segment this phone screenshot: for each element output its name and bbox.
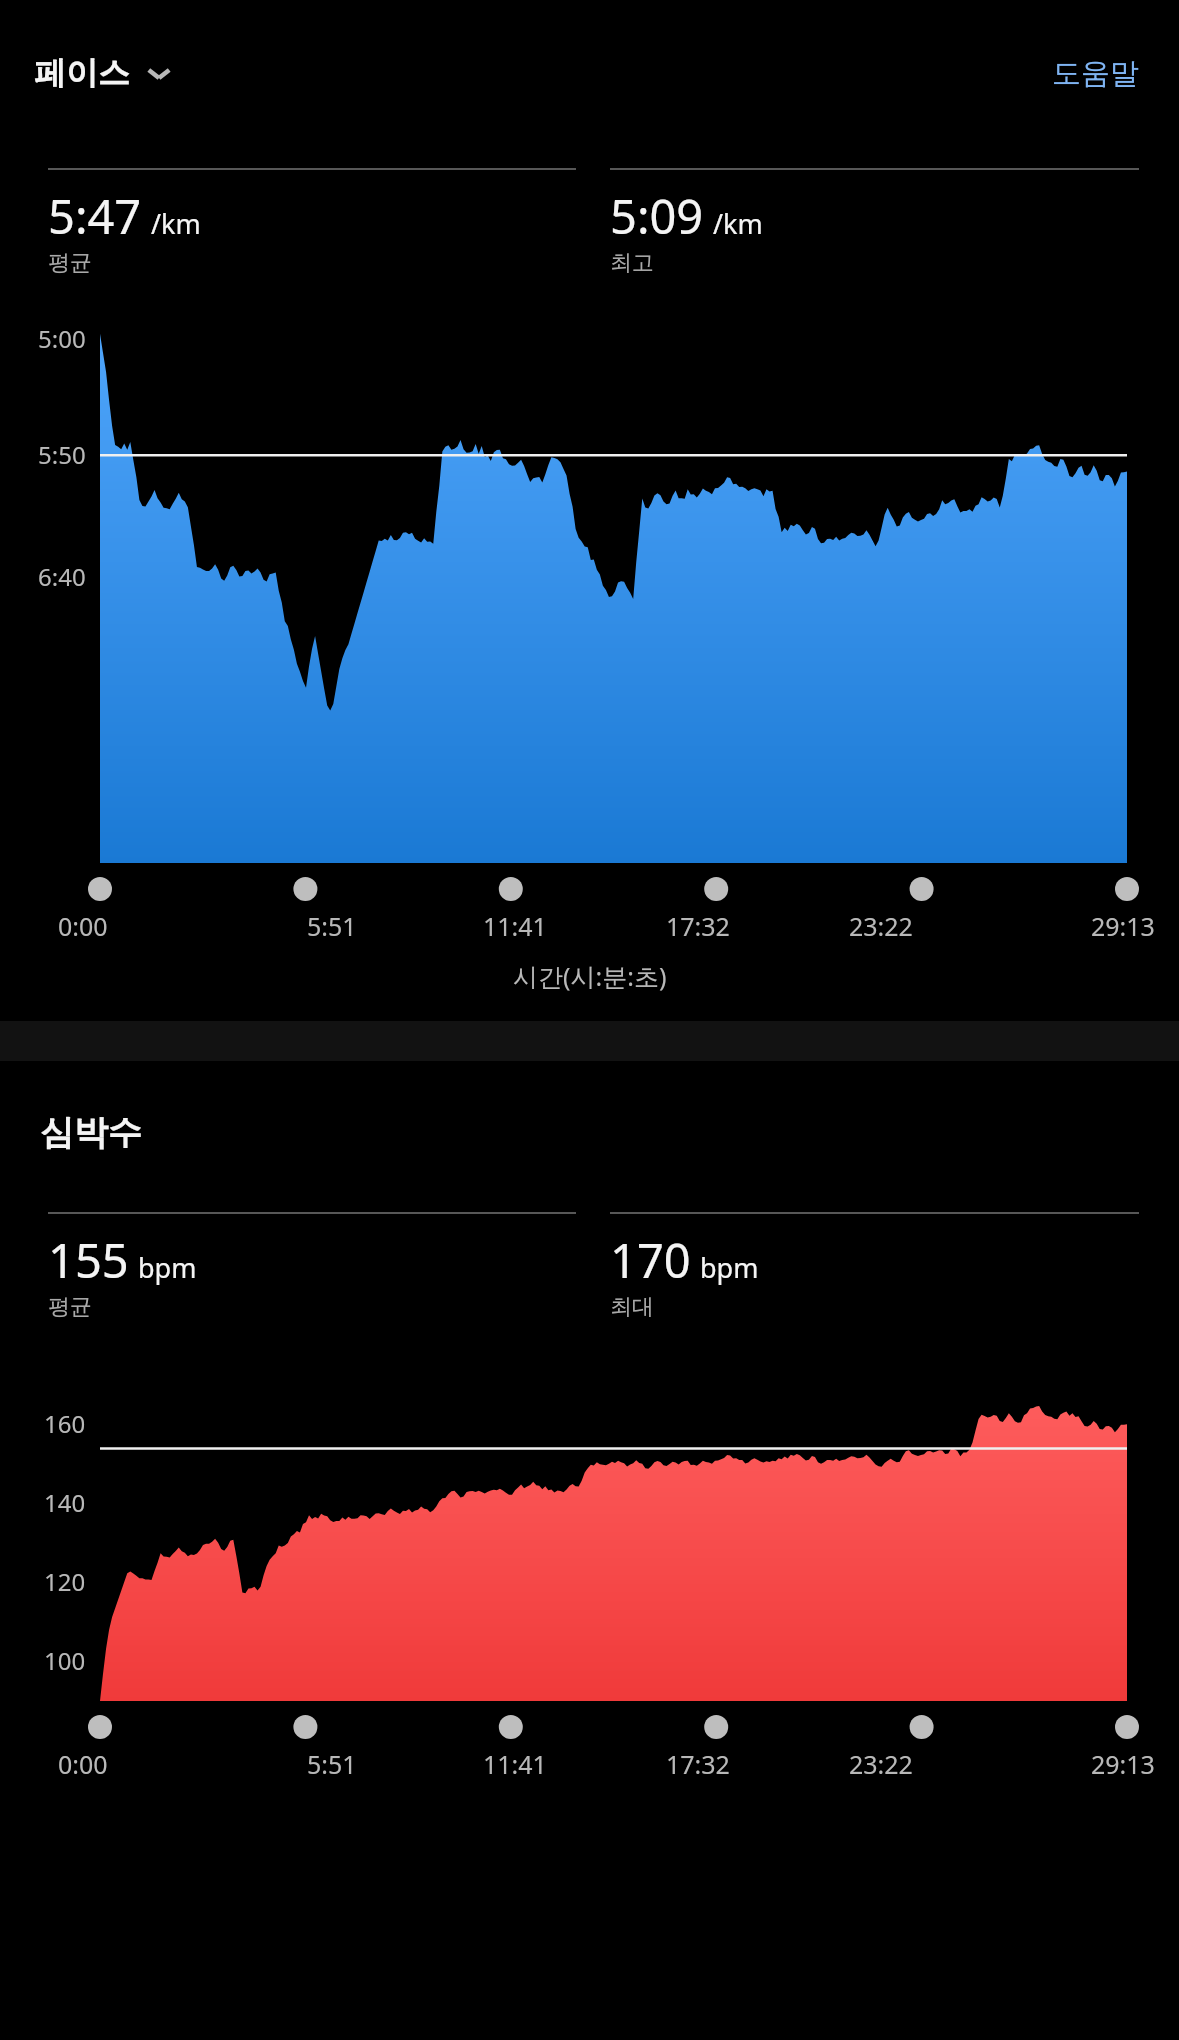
other: Change metric [144, 58, 174, 88]
staticText: 100 [44, 1644, 86, 1677]
staticText: 5:09 [610, 184, 704, 248]
staticText: 170 [610, 1228, 691, 1292]
staticText: 심박수 [40, 1111, 142, 1154]
staticText: 5:50 [38, 438, 86, 471]
staticText: 23:22 [849, 909, 913, 943]
staticText: /km [713, 205, 763, 242]
staticText: 17:32 [666, 1747, 730, 1781]
staticText: 5:51 [307, 1747, 357, 1781]
staticText: /km [151, 205, 201, 242]
staticText: 160 [44, 1407, 86, 1440]
staticText: 시간(시:분:초) [513, 959, 667, 993]
staticText: 5:00 [38, 322, 86, 355]
staticText: 평균 [48, 1293, 92, 1321]
staticText: 최대 [610, 1293, 654, 1321]
staticText: 17:32 [666, 909, 730, 943]
staticText: 페이스 [34, 53, 130, 93]
staticText: bpm [700, 1249, 759, 1286]
staticText: 0:00 [58, 1747, 108, 1781]
staticText: 155 [48, 1228, 129, 1292]
button[interactable]: 도움말 [1046, 49, 1145, 98]
button[interactable]: 페이스 [34, 53, 174, 93]
staticText: 최고 [610, 249, 654, 277]
staticText: 29:13 [1091, 1747, 1155, 1781]
staticText: 11:41 [483, 1747, 547, 1781]
staticText: 도움말 [1052, 55, 1139, 92]
staticText: 29:13 [1091, 909, 1155, 943]
staticText: 6:40 [38, 560, 86, 593]
staticText: 140 [44, 1486, 86, 1519]
staticText: 5:47 [48, 184, 142, 248]
staticText: 11:41 [483, 909, 547, 943]
staticText: 평균 [48, 249, 92, 277]
staticText: 23:22 [849, 1747, 913, 1781]
staticText: 120 [44, 1565, 86, 1598]
staticText: 0:00 [58, 909, 108, 943]
staticText: bpm [138, 1249, 197, 1286]
staticText: 5:51 [307, 909, 357, 943]
